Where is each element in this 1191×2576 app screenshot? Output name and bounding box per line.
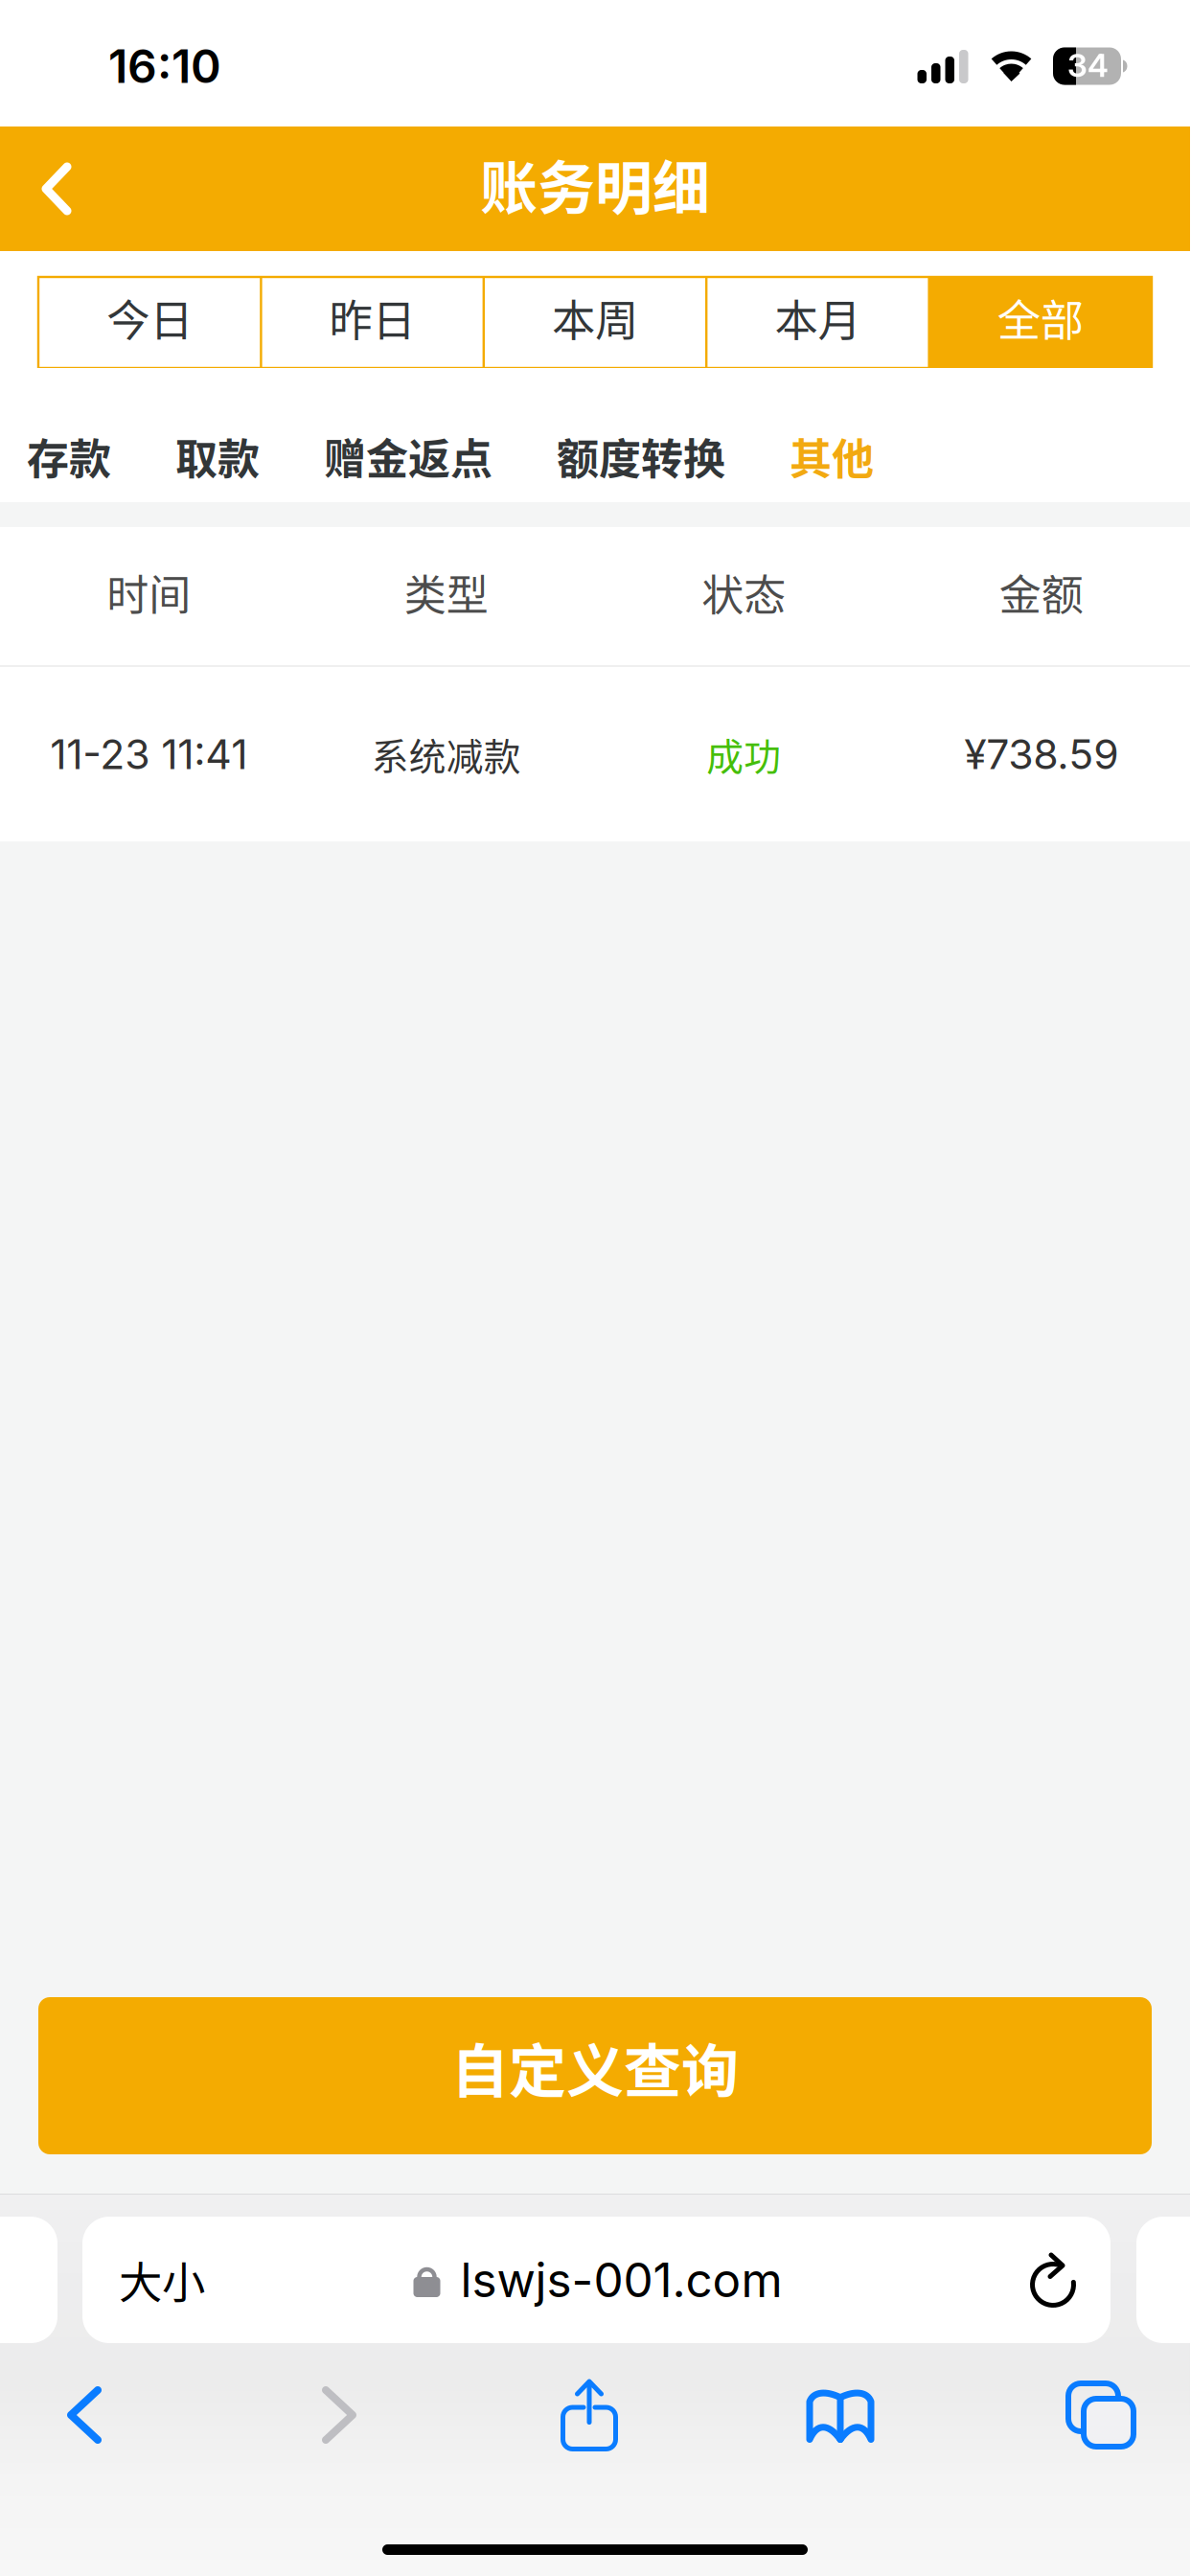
staticText: 金额 (999, 562, 1083, 623)
staticText: 大小 (119, 2248, 205, 2311)
button[interactable]: 后退 (0, 2343, 169, 2487)
staticText: 时间 (107, 562, 191, 623)
staticText: 34 (1067, 46, 1109, 84)
button[interactable]: 本周 (484, 277, 706, 368)
button[interactable]: 昨日 (261, 277, 484, 368)
button[interactable]: 全部 (929, 277, 1152, 368)
staticText: 取款 (175, 426, 260, 487)
button[interactable]: 存款 (27, 410, 175, 502)
staticText: 自定义查询 (451, 2026, 739, 2109)
staticText: 赠金返点 (324, 426, 492, 487)
staticText: 系统减款 (372, 727, 521, 781)
button[interactable]: 前进 (169, 2343, 510, 2487)
staticText: 本周 (552, 286, 638, 349)
staticText: 本月 (775, 286, 861, 349)
staticText: 今日 (107, 286, 193, 349)
staticText: 成功 (706, 727, 781, 781)
staticText: 存款 (27, 426, 111, 487)
button[interactable]: 额度转换 (557, 410, 790, 502)
button[interactable]: 分享 (510, 2343, 669, 2487)
button[interactable]: 取款 (175, 410, 324, 502)
staticText: lswjs-001.com (460, 2251, 782, 2309)
staticText: ¥738.59 (964, 729, 1118, 779)
button[interactable]: 书签 (669, 2343, 1012, 2487)
staticText: 昨日 (329, 286, 415, 349)
staticText: 16:10 (108, 38, 221, 94)
button[interactable]: 其他 (790, 410, 874, 502)
button[interactable]: 自定义查询 (38, 1997, 1152, 2154)
staticText: 类型 (404, 562, 488, 623)
button[interactable]: 标签页 (1012, 2343, 1190, 2487)
button[interactable]: 今日 (38, 277, 261, 368)
button[interactable]: 赠金返点 (324, 410, 557, 502)
button[interactable]: lswjs-001.com (82, 2217, 1111, 2343)
staticText: 其他 (790, 426, 874, 487)
button[interactable]: 本月 (706, 277, 929, 368)
staticText: 状态 (702, 562, 786, 623)
staticText: 全部 (997, 286, 1083, 349)
staticText: 账务明细 (480, 142, 710, 226)
staticText: 11-23 11:41 (50, 729, 247, 779)
button[interactable]: 返回 (0, 126, 109, 251)
staticText: 额度转换 (557, 426, 725, 487)
